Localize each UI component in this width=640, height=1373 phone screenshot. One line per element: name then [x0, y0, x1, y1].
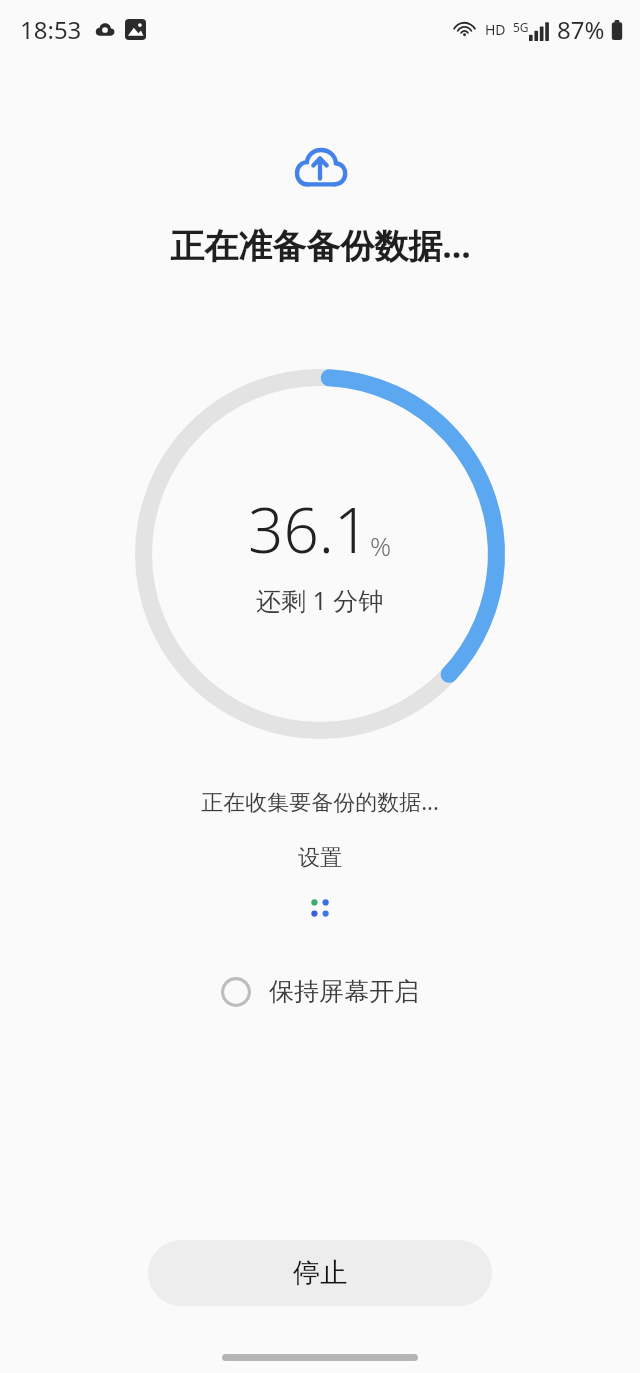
staticText: 正在准备备份数据...: [170, 222, 471, 268]
staticText: 还剩 1 分钟: [256, 583, 384, 617]
staticText: 36.1: [248, 487, 370, 571]
button[interactable]: 保持屏幕开启: [211, 970, 429, 1013]
staticText: 保持屏幕开启: [269, 976, 419, 1007]
button[interactable]: 设置: [290, 842, 350, 874]
staticText: 设置: [298, 844, 342, 872]
other: Cloud backup: [291, 138, 349, 196]
staticText: 停止: [293, 1256, 347, 1290]
staticText: %: [370, 528, 392, 563]
staticText: 87%: [557, 13, 605, 46]
button[interactable]: 停止: [148, 1240, 492, 1306]
staticText: 18:53: [20, 13, 82, 46]
staticText: 5G: [513, 19, 529, 35]
staticText: HD: [485, 20, 506, 39]
staticText: 正在收集要备份的数据...: [201, 786, 439, 816]
